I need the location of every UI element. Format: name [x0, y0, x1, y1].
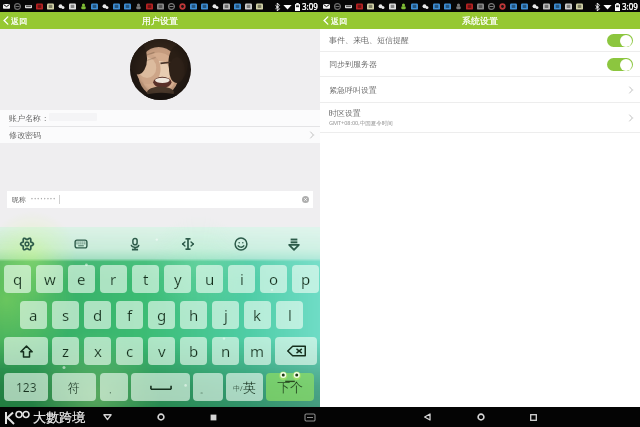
button[interactable]: f: [116, 301, 143, 329]
button[interactable]: Period: [193, 373, 223, 401]
staticText: 修改密码: [9, 130, 41, 140]
staticText: 事件、来电、短信提醒: [329, 35, 409, 45]
staticText: b: [189, 341, 199, 361]
staticText: 时区设置: [329, 108, 361, 118]
button[interactable]: Voice input: [108, 227, 161, 261]
staticText: 中/: [233, 384, 243, 394]
button[interactable]: 下个: [266, 373, 314, 401]
button[interactable]: Emoji: [214, 227, 267, 261]
staticText: w: [44, 269, 56, 289]
button[interactable]: Chinese English toggle: [226, 373, 263, 401]
button[interactable]: Space: [131, 373, 190, 401]
button[interactable]: 事件、来电、短信提醒: [320, 29, 640, 52]
staticText: 紧急呼叫设置: [329, 85, 377, 95]
staticText: k: [253, 305, 262, 325]
staticText: 3:09: [302, 1, 318, 12]
staticText: p: [301, 269, 311, 289]
button[interactable]: g: [148, 301, 175, 329]
button[interactable]: 修改密码: [0, 127, 320, 143]
button[interactable]: Backspace: [275, 337, 317, 365]
staticText: i: [240, 269, 244, 289]
button[interactable]: t: [132, 265, 159, 293]
button[interactable]: 同步到服务器: [320, 52, 640, 77]
button[interactable]: 时区设置: [320, 103, 640, 133]
button[interactable]: Clear: [302, 196, 309, 203]
staticText: f: [127, 305, 133, 325]
staticText: n: [221, 341, 231, 361]
staticText: 返回: [11, 16, 27, 26]
button[interactable]: s: [52, 301, 79, 329]
button[interactable]: v: [148, 337, 175, 365]
staticText: x: [94, 341, 102, 361]
button[interactable]: Back: [81, 407, 134, 427]
staticText: z: [62, 341, 70, 361]
button[interactable]: k: [244, 301, 271, 329]
staticText: c: [126, 341, 134, 361]
staticText: d: [93, 305, 103, 325]
staticText: e: [77, 269, 86, 289]
button[interactable]: Home: [454, 407, 507, 427]
staticText: t: [143, 269, 149, 289]
staticText: 系统设置: [462, 15, 498, 26]
button[interactable]: 返回: [320, 12, 352, 29]
button[interactable]: l: [276, 301, 303, 329]
staticText: 123: [16, 379, 37, 395]
staticText: o: [269, 269, 279, 289]
button[interactable]: m: [244, 337, 271, 365]
button[interactable]: e: [68, 265, 95, 293]
staticText: j: [224, 305, 228, 325]
button[interactable]: 符: [52, 373, 96, 401]
button[interactable]: Comma: [100, 373, 128, 401]
button[interactable]: r: [100, 265, 127, 293]
staticText: q: [13, 269, 23, 289]
staticText: 返回: [331, 16, 347, 26]
staticText: g: [157, 305, 167, 325]
button[interactable]: Hide keyboard: [267, 227, 320, 261]
staticText: y: [174, 269, 182, 289]
button[interactable]: 123: [4, 373, 48, 401]
staticText: 昵称: [12, 195, 26, 204]
staticText: r: [110, 269, 117, 289]
staticText: l: [288, 305, 292, 325]
button[interactable]: q: [4, 265, 31, 293]
button[interactable]: n: [212, 337, 239, 365]
staticText: 3:09: [622, 1, 638, 12]
button[interactable]: 昵称: [7, 191, 313, 208]
button[interactable]: y: [164, 265, 191, 293]
button[interactable]: Recents: [187, 407, 240, 427]
button[interactable]: 返回: [0, 12, 32, 29]
button[interactable]: a: [20, 301, 47, 329]
button[interactable]: h: [180, 301, 207, 329]
button[interactable]: Shift: [4, 337, 48, 365]
staticText: • • • • • • • •: [31, 196, 56, 203]
staticText: ，: [106, 385, 114, 395]
staticText: h: [189, 305, 199, 325]
button[interactable]: Back: [401, 407, 454, 427]
staticText: a: [29, 305, 38, 325]
button[interactable]: b: [180, 337, 207, 365]
button[interactable]: Settings: [0, 227, 54, 261]
button[interactable]: c: [116, 337, 143, 365]
button[interactable]: Move cursor: [161, 227, 214, 261]
button[interactable]: d: [84, 301, 111, 329]
button[interactable]: Keyboard layout: [54, 227, 108, 261]
staticText: 同步到服务器: [329, 59, 377, 69]
button[interactable]: p: [292, 265, 319, 293]
button[interactable]: Recents: [507, 407, 560, 427]
button[interactable]: z: [52, 337, 79, 365]
button[interactable]: u: [196, 265, 223, 293]
button[interactable]: 紧急呼叫设置: [320, 77, 640, 103]
button[interactable]: j: [212, 301, 239, 329]
staticText: 英: [243, 379, 256, 395]
button[interactable]: o: [260, 265, 287, 293]
button[interactable]: 账户名称：: [0, 110, 320, 126]
staticText: 账户名称：: [9, 113, 49, 123]
button[interactable]: Profile photo: [130, 39, 191, 100]
button[interactable]: w: [36, 265, 63, 293]
staticText: GMT+08:00,中国夏令时间: [329, 119, 393, 127]
button[interactable]: x: [84, 337, 111, 365]
staticText: u: [205, 269, 215, 289]
button[interactable]: Home: [134, 407, 187, 427]
staticText: 大數跨境: [33, 409, 85, 425]
button[interactable]: i: [228, 265, 255, 293]
